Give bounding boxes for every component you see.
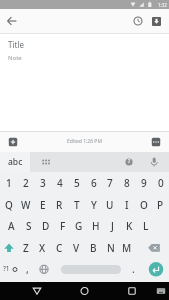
button[interactable] <box>122 282 142 300</box>
button[interactable]: 2 <box>17 172 34 194</box>
button[interactable] <box>144 258 169 280</box>
button[interactable]: abc <box>0 152 30 172</box>
staticText: F <box>60 219 66 233</box>
staticText: Y <box>91 198 97 212</box>
button[interactable] <box>7 136 19 148</box>
button[interactable]: V <box>68 237 85 259</box>
staticText: R <box>56 198 63 212</box>
staticText: Q <box>5 198 13 212</box>
staticText: A <box>8 219 15 233</box>
staticText: 4 <box>57 176 63 190</box>
button[interactable]: C <box>51 237 68 259</box>
button[interactable]: D <box>37 215 54 237</box>
staticText: B <box>90 241 97 255</box>
staticText: W <box>21 198 31 212</box>
button[interactable]: W <box>17 194 34 216</box>
staticText: K <box>126 219 133 233</box>
staticText: D <box>42 219 50 233</box>
button[interactable] <box>74 282 94 300</box>
staticText: 8 <box>124 176 130 190</box>
button[interactable]: T <box>68 194 85 216</box>
staticText: 6 <box>91 176 97 190</box>
button[interactable]: K <box>121 215 138 237</box>
button[interactable]: 7 <box>101 172 118 194</box>
staticText: Edited 1:26 PM <box>67 138 102 145</box>
staticText: L <box>143 219 149 233</box>
button[interactable]: B <box>85 237 102 259</box>
button[interactable] <box>36 258 53 280</box>
staticText: 0 <box>158 176 164 190</box>
staticText: O <box>140 198 148 212</box>
staticText: P <box>157 198 164 212</box>
staticText: H <box>92 219 100 233</box>
staticText: Z <box>23 241 29 255</box>
button[interactable] <box>27 282 47 300</box>
button[interactable]: P <box>152 194 169 216</box>
staticText: J <box>111 219 114 233</box>
staticText: M <box>122 241 132 255</box>
button[interactable]: S <box>20 215 37 237</box>
button[interactable]: M <box>118 237 135 259</box>
button[interactable]: 0 <box>152 172 169 194</box>
button[interactable]: Q <box>0 194 17 216</box>
staticText: V <box>73 241 80 255</box>
button[interactable]: 4 <box>51 172 68 194</box>
button[interactable] <box>144 237 169 259</box>
staticText: 9 <box>141 176 147 190</box>
staticText: . <box>132 262 135 276</box>
button[interactable]: A <box>3 215 20 237</box>
staticText: 7 <box>107 176 113 190</box>
button[interactable]: Z <box>17 237 34 259</box>
button[interactable]: U <box>101 194 118 216</box>
button[interactable]: 3 <box>34 172 51 194</box>
staticText: 5 <box>74 176 80 190</box>
staticText: I <box>125 198 129 212</box>
staticText: S <box>26 219 32 233</box>
button[interactable]: 5 <box>68 172 85 194</box>
staticText: ?1 <box>3 264 10 273</box>
staticText: E <box>40 198 46 212</box>
button[interactable]: 6 <box>85 172 102 194</box>
staticText: C <box>56 241 63 255</box>
staticText: abc <box>8 156 23 168</box>
staticText: Note <box>8 54 22 62</box>
staticText: G <box>75 219 83 233</box>
staticText: X <box>39 241 46 255</box>
button[interactable] <box>150 136 162 148</box>
staticText: N <box>107 241 115 255</box>
button[interactable]: O <box>135 194 152 216</box>
button[interactable]: 9 <box>135 172 152 194</box>
staticText: 3 <box>40 176 46 190</box>
button[interactable] <box>0 258 19 280</box>
button[interactable] <box>151 282 169 300</box>
staticText: , <box>26 262 29 276</box>
button[interactable]: F <box>54 215 71 237</box>
staticText: 1:32 <box>158 2 167 8</box>
button[interactable]: R <box>51 194 68 216</box>
button[interactable]: N <box>102 237 119 259</box>
button[interactable]: Y <box>85 194 102 216</box>
button[interactable]: I <box>118 194 135 216</box>
button[interactable]: G <box>70 215 87 237</box>
button[interactable] <box>57 258 125 280</box>
button[interactable] <box>0 237 17 259</box>
button[interactable]: X <box>34 237 51 259</box>
button[interactable]: 1 <box>0 172 17 194</box>
button[interactable]: J <box>104 215 121 237</box>
staticText: U <box>106 198 114 212</box>
button[interactable]: E <box>34 194 51 216</box>
button[interactable] <box>129 12 147 30</box>
button[interactable]: , <box>19 258 36 280</box>
button[interactable] <box>148 13 165 30</box>
staticText: ? <box>128 158 131 165</box>
button[interactable]: . <box>125 258 142 280</box>
button[interactable]: 8 <box>118 172 135 194</box>
button[interactable]: H <box>87 215 104 237</box>
staticText: T <box>74 198 80 212</box>
button[interactable]: L <box>137 215 154 237</box>
button[interactable] <box>0 9 24 33</box>
staticText: Title <box>8 39 24 50</box>
staticText: 1 <box>6 176 12 190</box>
staticText: 2 <box>23 176 29 190</box>
